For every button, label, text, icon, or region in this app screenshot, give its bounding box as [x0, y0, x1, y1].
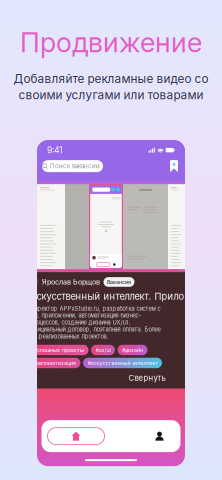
staticText: Директор APPxStudio.ru, разработка систе… — [29, 305, 160, 340]
button[interactable]: Profile — [144, 428, 174, 445]
staticText: своими услугами или товарами — [18, 88, 203, 102]
staticText: #автоматизация — [34, 360, 76, 366]
staticText: Ярослав Борщов — [42, 278, 100, 286]
button[interactable]: Home — [47, 428, 104, 445]
staticText: Добавляйте рекламные видео со — [13, 72, 208, 86]
button[interactable]: #дизайн — [117, 345, 147, 355]
button[interactable]: Bookmarks — [170, 160, 178, 172]
button[interactable]: #ux/ui — [91, 345, 115, 355]
staticText: Вакансия — [107, 279, 131, 285]
staticText: Искусственный интеллект. Прило… — [29, 291, 192, 302]
staticText: Поиск вакансии — [50, 162, 100, 170]
button[interactable]: #автоматизация — [29, 358, 80, 368]
staticText: Продвижение — [20, 26, 202, 59]
button[interactable]: Свернуть — [128, 373, 165, 383]
staticText: 9:41 — [47, 145, 62, 155]
staticText: #искусственный интеллект — [87, 360, 157, 366]
staticText: #дизайн — [122, 347, 143, 353]
button[interactable]: Поиск вакансии — [42, 160, 103, 172]
button[interactable]: #искусственный интеллект — [83, 358, 162, 368]
staticText: #ux/ui — [95, 347, 110, 353]
button[interactable]: Успешные проекты — [29, 345, 88, 355]
staticText: Свернуть — [128, 373, 165, 383]
staticText: Успешные проекты — [34, 347, 84, 353]
